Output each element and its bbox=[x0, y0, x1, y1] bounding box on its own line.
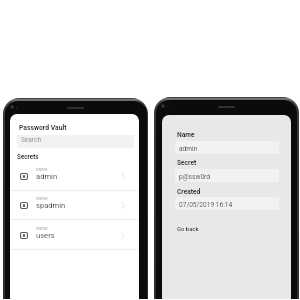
staticText: 07/05/2019 16:14 bbox=[179, 201, 233, 209]
button[interactable]: 07/05/2019 16:14 bbox=[175, 197, 279, 210]
other: Open spadmin bbox=[121, 202, 125, 209]
button[interactable]: name bbox=[10, 220, 139, 250]
staticText: name bbox=[36, 167, 48, 172]
staticText: spadmin bbox=[36, 201, 66, 210]
staticText: admin bbox=[36, 172, 58, 181]
button[interactable]: admin bbox=[175, 141, 279, 154]
staticText: users bbox=[36, 231, 55, 240]
button[interactable]: name bbox=[10, 161, 139, 191]
staticText: p@ssw0rd bbox=[179, 173, 210, 181]
staticText: Go back bbox=[177, 226, 199, 233]
staticText: Password Vault bbox=[19, 124, 67, 132]
other: Open admin bbox=[121, 173, 125, 180]
button[interactable]: p@ssw0rd bbox=[175, 169, 279, 182]
staticText: Search bbox=[21, 136, 41, 144]
staticText: Secrets bbox=[17, 153, 39, 160]
button[interactable]: Go back bbox=[177, 226, 199, 233]
other: Open users bbox=[121, 232, 125, 239]
button[interactable]: name bbox=[10, 190, 139, 220]
staticText: Secret bbox=[177, 159, 197, 167]
staticText: Name bbox=[177, 131, 195, 139]
staticText: name bbox=[36, 226, 48, 231]
staticText: name bbox=[36, 196, 48, 201]
staticText: Created bbox=[177, 188, 201, 196]
staticText: admin bbox=[179, 145, 198, 153]
button[interactable]: Search bbox=[17, 135, 134, 148]
